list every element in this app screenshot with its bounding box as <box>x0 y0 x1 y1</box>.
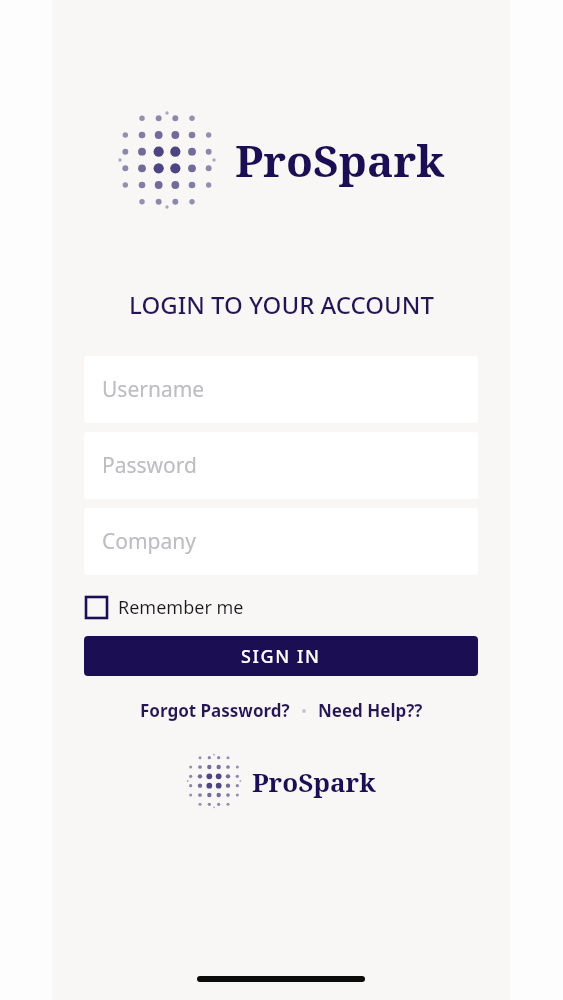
staticText: Company <box>102 527 196 556</box>
staticText: LOGIN TO YOUR ACCOUNT <box>129 288 434 321</box>
staticText: ProSpark <box>252 764 376 799</box>
button[interactable]: SIGN IN <box>84 636 478 676</box>
button[interactable]: Company <box>84 508 478 575</box>
staticText: Need Help?? <box>318 699 423 722</box>
staticText: Username <box>102 375 205 404</box>
staticText: SIGN IN <box>241 644 321 669</box>
button[interactable]: Username <box>84 356 478 423</box>
button[interactable]: Password <box>84 432 478 499</box>
staticText: Forgot Password? <box>140 699 290 722</box>
button[interactable]: Need Help?? <box>314 696 427 725</box>
button[interactable]: Forgot Password? <box>136 696 294 725</box>
staticText: Password <box>102 451 197 480</box>
staticText: ProSpark <box>235 130 445 190</box>
staticText: Remember me <box>118 595 244 620</box>
button[interactable]: Remember me <box>84 591 246 624</box>
